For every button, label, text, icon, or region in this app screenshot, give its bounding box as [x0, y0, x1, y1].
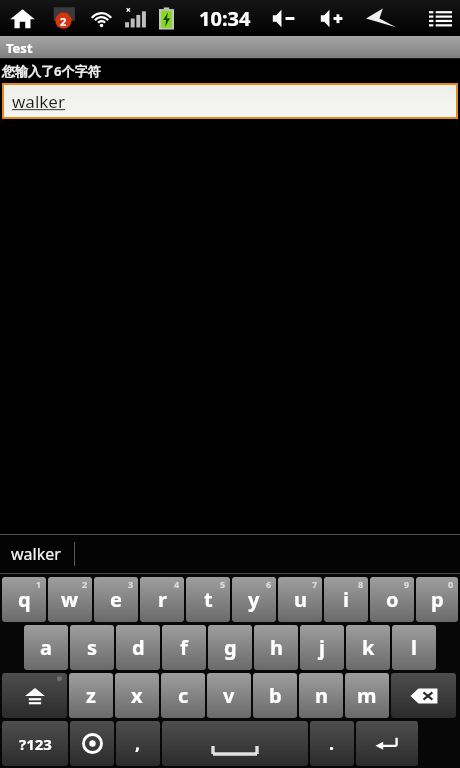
staticText: k: [362, 634, 375, 661]
staticText: i: [343, 586, 349, 613]
button[interactable]: k: [346, 625, 390, 670]
staticText: walker: [12, 90, 65, 113]
other: Wi-Fi: [90, 7, 113, 30]
staticText: p: [431, 586, 444, 613]
staticText: a: [40, 634, 52, 661]
staticText: n: [315, 682, 328, 709]
staticText: .: [329, 731, 335, 756]
staticText: u: [294, 586, 307, 613]
button[interactable]: u: [278, 577, 322, 622]
staticText: r: [158, 586, 167, 613]
staticText: ,: [135, 731, 141, 756]
button[interactable]: r: [140, 577, 184, 622]
staticText: q: [18, 586, 31, 613]
staticText: j: [319, 634, 325, 661]
button[interactable]: Shift: [2, 673, 67, 718]
staticText: 3: [128, 578, 134, 590]
other: Notifications: [50, 5, 77, 32]
staticText: 6: [266, 578, 272, 590]
button[interactable]: Settings: [70, 721, 114, 766]
button[interactable]: .: [310, 721, 354, 766]
staticText: b: [269, 682, 282, 709]
button[interactable]: i: [324, 577, 368, 622]
staticText: f: [180, 634, 188, 661]
staticText: 8: [358, 578, 364, 590]
button[interactable]: t: [186, 577, 230, 622]
other: Back: [366, 7, 396, 30]
other: Volume up: [320, 8, 347, 29]
button[interactable]: h: [254, 625, 298, 670]
button[interactable]: n: [299, 673, 343, 718]
staticText: e: [110, 586, 122, 613]
button[interactable]: o: [370, 577, 414, 622]
button[interactable]: l: [392, 625, 436, 670]
button[interactable]: a: [24, 625, 68, 670]
staticText: 7: [312, 578, 318, 590]
other: Signal: [124, 7, 146, 29]
staticText: 4: [174, 578, 180, 590]
button[interactable]: z: [69, 673, 113, 718]
staticText: ?123: [19, 734, 52, 754]
staticText: z: [86, 682, 96, 709]
button[interactable]: d: [116, 625, 160, 670]
button[interactable]: e: [94, 577, 138, 622]
staticText: m: [357, 682, 377, 709]
button[interactable]: b: [253, 673, 297, 718]
staticText: 5: [220, 578, 226, 590]
staticText: d: [132, 634, 145, 661]
staticText: l: [411, 634, 417, 661]
button[interactable]: w: [48, 577, 92, 622]
button[interactable]: Space: [162, 721, 308, 766]
button[interactable]: f: [162, 625, 206, 670]
button[interactable]: walker: [4, 85, 456, 117]
button[interactable]: m: [345, 673, 389, 718]
staticText: y: [248, 586, 260, 613]
other: Menu: [429, 7, 452, 30]
staticText: 0: [448, 578, 454, 590]
button[interactable]: v: [207, 673, 251, 718]
staticText: 您输入了6个字符: [2, 62, 101, 80]
button[interactable]: s: [70, 625, 114, 670]
staticText: 10:34: [199, 5, 251, 32]
button[interactable]: p: [416, 577, 458, 622]
button[interactable]: y: [232, 577, 276, 622]
staticText: 2: [82, 578, 88, 590]
button[interactable]: Delete: [391, 673, 456, 718]
staticText: c: [178, 682, 189, 709]
button[interactable]: ?123: [2, 721, 68, 766]
button[interactable]: ,: [116, 721, 160, 766]
staticText: g: [224, 634, 237, 661]
button[interactable]: j: [300, 625, 344, 670]
staticText: 1: [36, 578, 42, 590]
staticText: x: [131, 682, 143, 709]
button[interactable]: q: [2, 577, 46, 622]
other: Home: [10, 6, 35, 31]
staticText: v: [223, 682, 235, 709]
button[interactable]: x: [115, 673, 159, 718]
other: Battery: [159, 7, 174, 30]
button[interactable]: Enter: [356, 721, 418, 766]
staticText: 9: [404, 578, 410, 590]
staticText: w: [61, 586, 79, 613]
staticText: 2: [60, 14, 67, 29]
staticText: Test: [6, 39, 33, 57]
button[interactable]: c: [161, 673, 205, 718]
button[interactable]: walker: [0, 535, 460, 573]
staticText: walker: [11, 543, 61, 565]
staticText: h: [270, 634, 283, 661]
other: Volume down: [272, 8, 299, 29]
staticText: s: [87, 634, 98, 661]
button[interactable]: g: [208, 625, 252, 670]
staticText: t: [204, 586, 213, 613]
staticText: o: [386, 586, 399, 613]
